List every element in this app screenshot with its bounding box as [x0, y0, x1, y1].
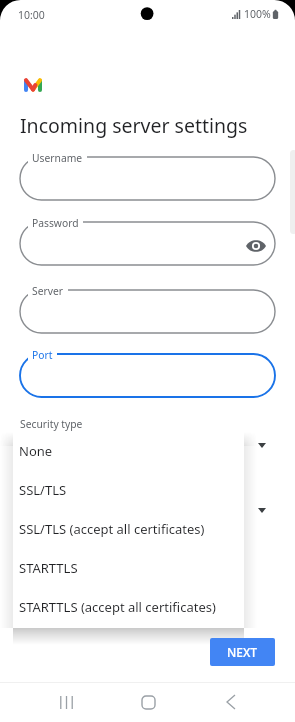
- button[interactable]: STARTTLS: [13, 548, 244, 587]
- staticText: Incoming server settings: [20, 112, 248, 139]
- button[interactable]: None: [13, 431, 244, 470]
- button[interactable]: NEXT: [210, 638, 275, 666]
- button[interactable]: Open dropdown: [250, 498, 274, 522]
- staticText: 100%: [244, 7, 271, 21]
- button[interactable]: STARTTLS (accept all certificates): [13, 587, 244, 626]
- staticText: SSL/TLS (accept all certificates): [19, 520, 205, 538]
- button[interactable]: Recents: [46, 682, 86, 722]
- staticText: STARTTLS: [19, 559, 78, 577]
- staticText: None: [19, 442, 53, 460]
- button[interactable]: Home: [128, 682, 168, 722]
- staticText: 10:00: [18, 8, 45, 22]
- button[interactable]: SSL/TLS (accept all certificates): [13, 509, 244, 548]
- button[interactable]: Back: [211, 682, 251, 722]
- button[interactable]: Server: [20, 290, 275, 333]
- staticText: Server: [32, 284, 64, 298]
- staticText: NEXT: [227, 644, 258, 660]
- staticText: Username: [32, 151, 83, 165]
- staticText: Password: [32, 216, 79, 230]
- button[interactable]: Open dropdown: [250, 433, 274, 457]
- button[interactable]: Port: [20, 354, 275, 397]
- button[interactable]: Username: [20, 157, 275, 200]
- staticText: Port: [32, 348, 53, 362]
- staticText: Security type: [20, 417, 83, 431]
- button[interactable]: Show password: [244, 234, 268, 258]
- staticText: SSL/TLS: [19, 481, 67, 499]
- button[interactable]: SSL/TLS: [13, 470, 244, 509]
- staticText: STARTTLS (accept all certificates): [19, 598, 216, 616]
- button[interactable]: Password: [20, 222, 275, 265]
